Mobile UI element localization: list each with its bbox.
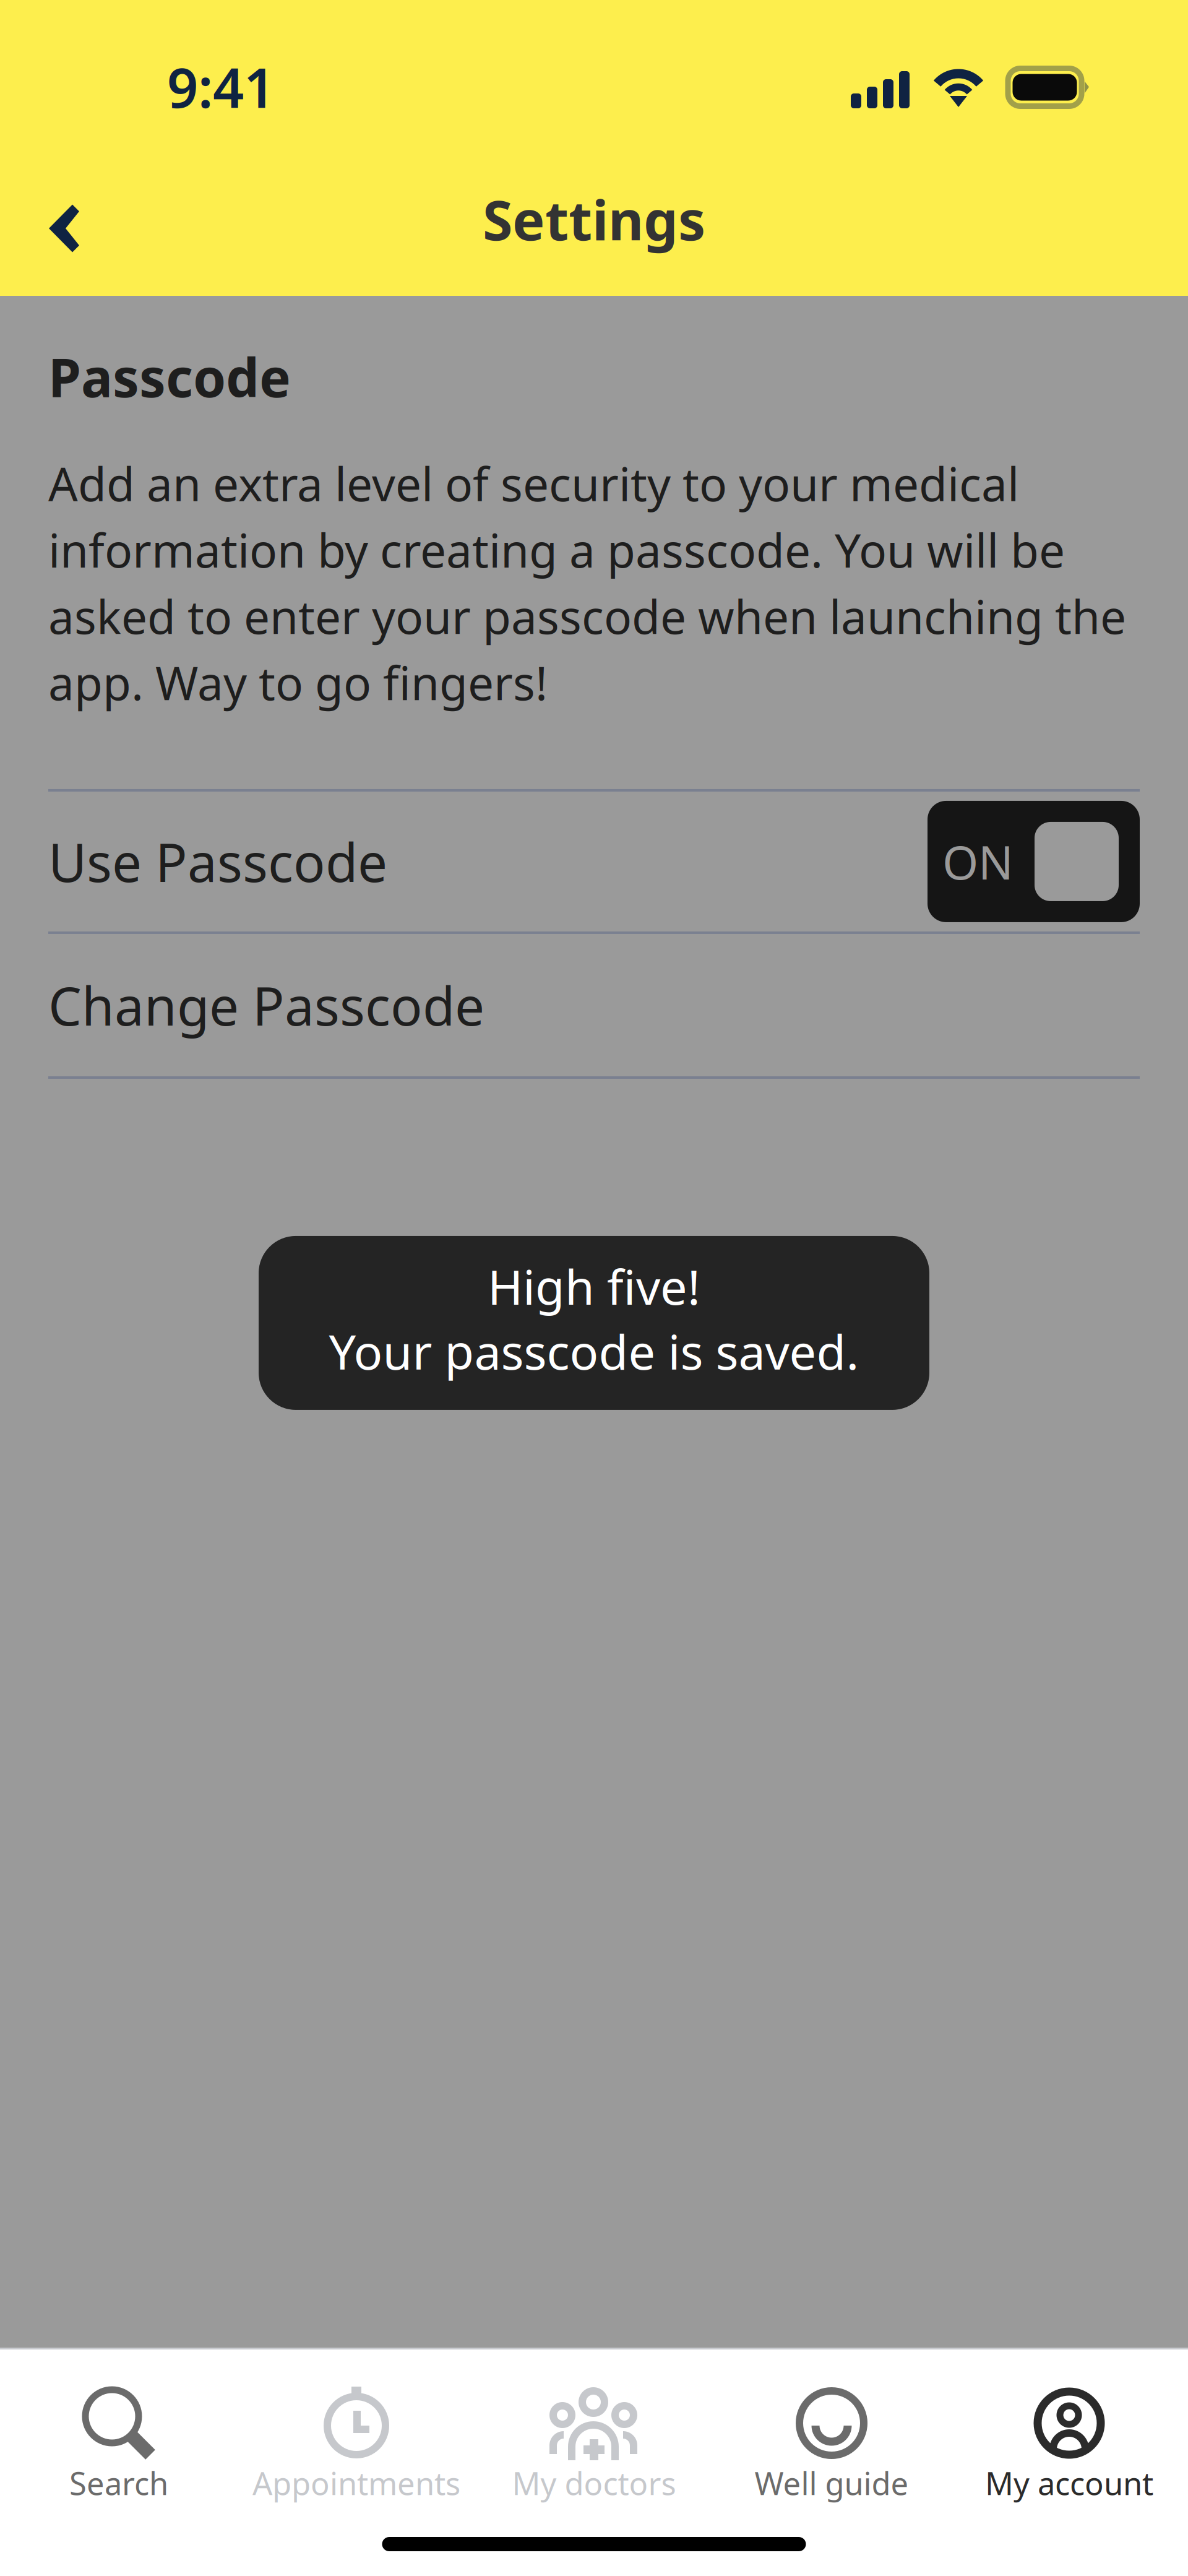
staticText: Well guide [755,2462,909,2504]
staticText: Change Passcode [48,970,484,1040]
staticText: Passcode [48,342,291,412]
staticText: Settings [483,183,705,255]
button[interactable]: Use Passcode, on [928,801,1140,922]
button[interactable]: My account [950,2349,1188,2504]
staticText: Add an extra level of security to your m… [48,453,1126,713]
staticText: My doctors [512,2462,676,2504]
staticText: Use Passcode [48,826,387,897]
button[interactable]: Well guide [713,2349,950,2504]
button[interactable]: Back [0,164,111,274]
button[interactable]: Search [0,2349,238,2504]
staticText: My account [985,2462,1153,2504]
staticText: High five! [488,1254,700,1318]
button[interactable]: My doctors [475,2349,713,2504]
staticText: Appointments [252,2462,460,2504]
button[interactable]: Change Passcode [48,934,1140,1076]
staticText: Your passcode is saved. [329,1319,859,1383]
button[interactable]: Appointments [238,2349,475,2504]
staticText: ON [942,831,1014,892]
staticText: 9:41 [167,51,275,123]
staticText: Search [69,2462,168,2504]
